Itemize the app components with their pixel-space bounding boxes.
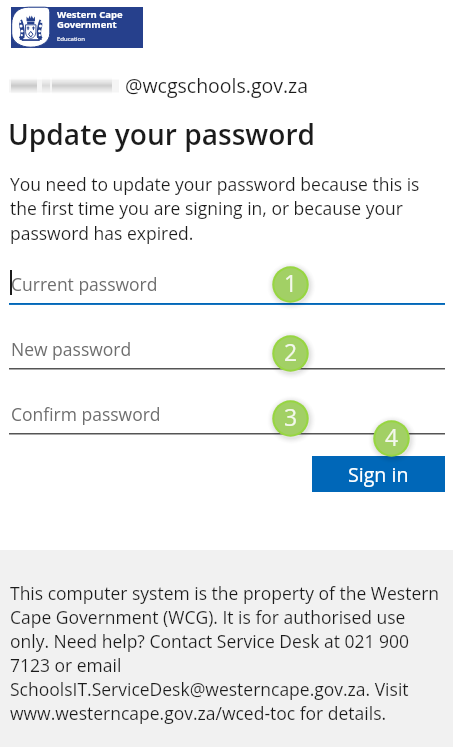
staticText: Confirm password [11, 402, 161, 426]
staticText: 3 [284, 401, 298, 432]
staticText: Government [57, 18, 117, 31]
staticText: 2 [284, 336, 298, 367]
staticText: Education [57, 35, 85, 43]
staticText: New password [11, 337, 132, 361]
button[interactable] [9, 291, 445, 317]
button[interactable] [9, 421, 445, 447]
other: Step 3 [267, 395, 314, 442]
staticText: Sign in [348, 461, 409, 488]
staticText: 4 [385, 421, 399, 452]
button[interactable]: Sign in [312, 456, 445, 492]
staticText: @wcgschools.gov.za [125, 72, 309, 99]
button[interactable] [9, 356, 445, 382]
other: Step 1 [267, 261, 314, 308]
staticText: Western Cape [57, 8, 123, 21]
staticText: Current password [11, 272, 158, 296]
other: Step 4 [368, 415, 415, 462]
staticText: This computer system is the property of … [10, 581, 446, 725]
staticText: Update your password [8, 115, 316, 153]
other: Step 2 [267, 330, 314, 377]
staticText: 1 [284, 267, 298, 298]
staticText: You need to update your password because… [10, 172, 435, 245]
